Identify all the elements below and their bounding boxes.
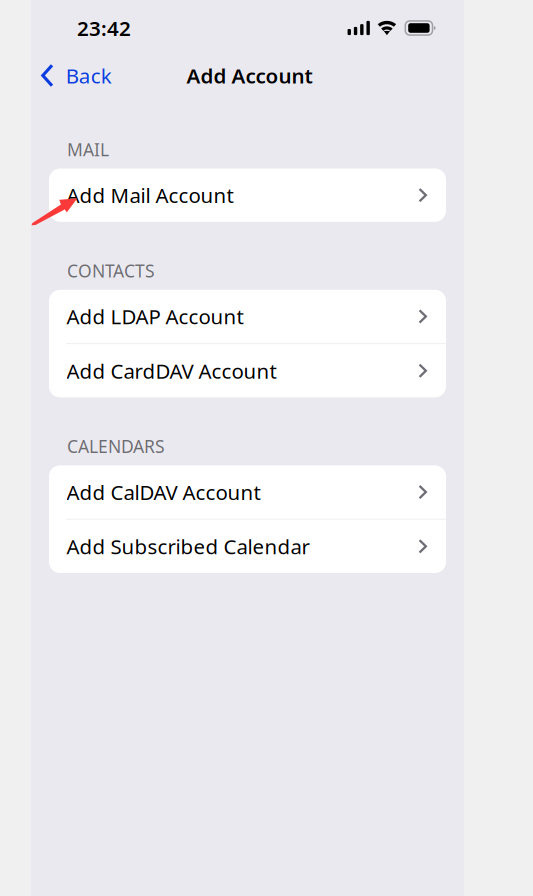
button[interactable]: Add CalDAV Account — [49, 465, 446, 519]
staticText: Add Subscribed Calendar — [66, 532, 309, 560]
button[interactable]: Add CardDAV Account — [49, 344, 446, 397]
staticText: CONTACTS — [67, 259, 155, 283]
staticText: Add Account — [186, 61, 312, 89]
button[interactable]: Add LDAP Account — [49, 290, 446, 343]
staticText: Add Mail Account — [66, 181, 233, 209]
button[interactable]: Back — [31, 55, 112, 95]
button[interactable]: Add Subscribed Calendar — [49, 520, 446, 573]
staticText: CALENDARS — [67, 434, 165, 458]
button[interactable]: Add Mail Account — [49, 168, 446, 222]
staticText: MAIL — [67, 137, 109, 161]
staticText: Add CardDAV Account — [66, 357, 276, 385]
staticText: Back — [66, 61, 112, 89]
staticText: Add CalDAV Account — [66, 478, 260, 506]
staticText: Add LDAP Account — [66, 303, 243, 330]
staticText: 23:42 — [77, 14, 131, 42]
